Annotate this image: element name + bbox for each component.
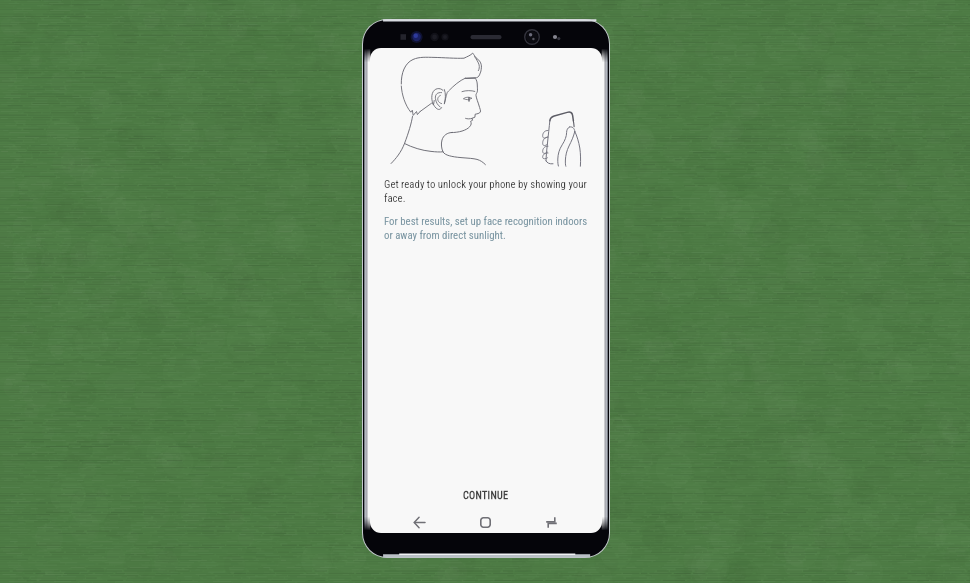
button[interactable]: Back	[397, 505, 442, 533]
staticText: For best results, set up face recognitio…	[384, 215, 588, 242]
staticText: Get ready to unlock your phone by showin…	[384, 178, 588, 205]
button[interactable]: CONTINUE	[370, 483, 602, 509]
button[interactable]: Recent apps	[529, 505, 574, 533]
button[interactable]: Home	[463, 505, 508, 533]
staticText: CONTINUE	[463, 490, 509, 502]
